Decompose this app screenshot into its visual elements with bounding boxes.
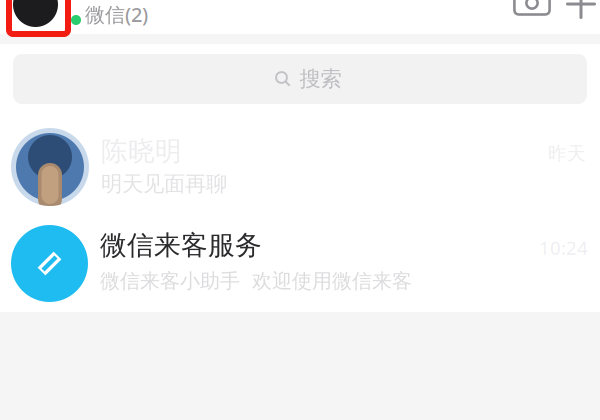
- button[interactable]: Camera: [509, 0, 555, 20]
- staticText: 10:24: [539, 235, 588, 260]
- button[interactable]: 陈晓明: [0, 114, 600, 218]
- button[interactable]: 微信来客服务: [0, 218, 600, 312]
- staticText: 明天见面再聊: [101, 171, 227, 197]
- staticText: 微信来客服务: [100, 229, 262, 262]
- button[interactable]: Add: [561, 0, 600, 24]
- staticText: 陈晓明: [101, 135, 182, 168]
- staticText: 昨天: [548, 142, 586, 165]
- staticText: 微信来客小助手 欢迎使用微信来客: [100, 269, 412, 293]
- staticText: 微信(2): [85, 1, 148, 28]
- staticText: 搜索: [299, 66, 341, 92]
- button[interactable]: 搜索: [13, 54, 587, 104]
